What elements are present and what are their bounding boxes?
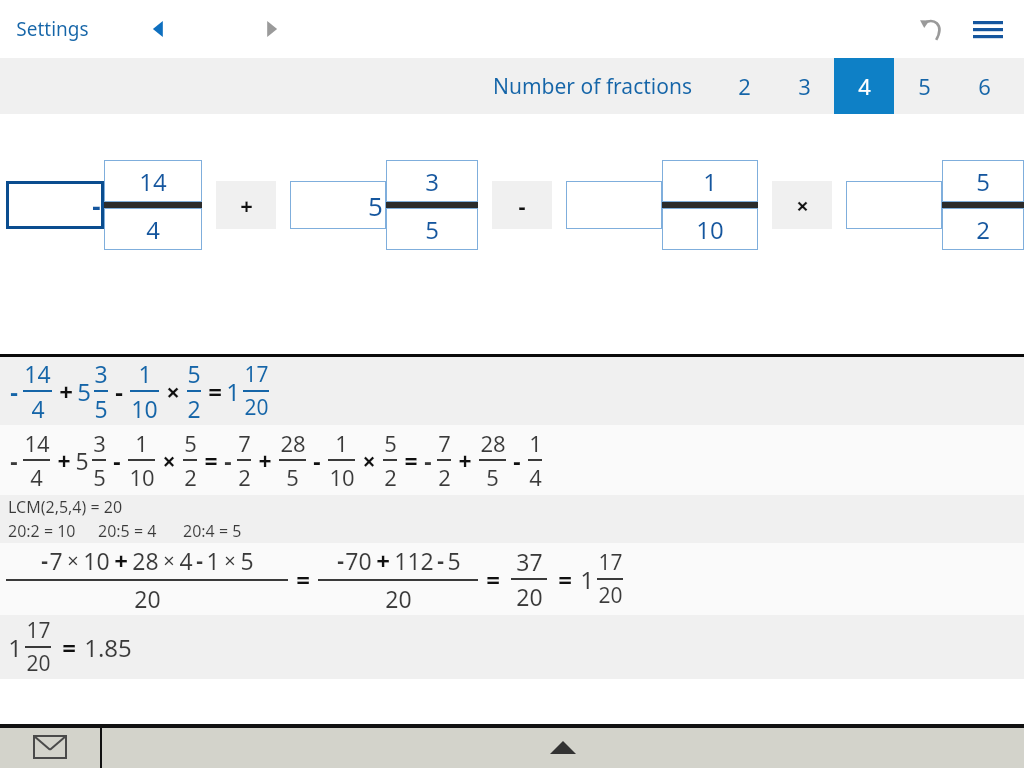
staticText: 5 <box>286 462 299 492</box>
staticText: 14 <box>24 358 51 389</box>
staticText: 4 <box>146 213 160 246</box>
staticText: 5 <box>447 545 461 576</box>
staticText: 6 <box>978 71 991 101</box>
staticText: 5 <box>240 545 254 576</box>
staticText: 5 <box>77 375 91 408</box>
staticText: LCM(2,5,4) = 20 <box>8 496 123 518</box>
staticText: 1 <box>703 165 717 198</box>
staticText: 2 <box>438 462 451 492</box>
button[interactable]: 5 <box>386 208 478 250</box>
button[interactable]: Menu <box>966 7 1010 51</box>
button[interactable]: - <box>6 181 104 229</box>
staticText: = <box>208 375 222 408</box>
button[interactable]: Expand <box>102 726 1024 768</box>
staticText: = <box>558 563 572 596</box>
staticText: 20 <box>516 581 543 612</box>
staticText: 17 <box>244 360 269 389</box>
staticText: 1 <box>226 375 240 408</box>
button[interactable]: Mail <box>0 726 100 768</box>
staticText: 14 <box>24 428 50 458</box>
staticText: 1 <box>135 428 148 458</box>
button[interactable]: 1 <box>0 615 1024 679</box>
staticText: × <box>166 375 180 408</box>
staticText: - <box>10 375 18 408</box>
staticText: 20 <box>244 393 269 422</box>
staticText: - <box>437 546 444 575</box>
button[interactable]: 2 <box>942 208 1024 250</box>
button[interactable]: 10 <box>662 208 758 250</box>
button[interactable]: 2 <box>714 58 774 114</box>
staticText: = <box>486 563 500 596</box>
staticText: + <box>258 445 272 476</box>
staticText: - <box>41 546 48 575</box>
staticText: - <box>113 445 121 476</box>
button[interactable]: - <box>0 357 1024 425</box>
button[interactable]: 6 <box>954 58 1014 114</box>
staticText: + <box>114 544 128 577</box>
staticText: 5 <box>486 462 499 492</box>
staticText: + <box>57 445 71 476</box>
staticText: × <box>67 547 79 574</box>
staticText: 1 <box>8 631 22 664</box>
button[interactable]: Undo <box>910 7 954 51</box>
button[interactable]: LCM(2,5,4) = 20 <box>0 495 1024 543</box>
staticText: - <box>337 546 344 575</box>
staticText: 7 <box>49 545 63 576</box>
button[interactable]: - <box>0 425 1024 495</box>
button[interactable]: + <box>216 181 276 229</box>
staticText: - <box>513 445 521 476</box>
staticText: 2 <box>976 213 990 246</box>
staticText: 28 <box>132 545 159 576</box>
button[interactable]: 5 <box>942 160 1024 202</box>
staticText: + <box>59 375 73 408</box>
staticText: 5 <box>384 428 397 458</box>
button[interactable]: Previous <box>138 9 178 49</box>
staticText: - <box>10 445 18 476</box>
staticText: 2 <box>184 462 197 492</box>
staticText: 4 <box>31 393 45 424</box>
button[interactable]: 4 <box>104 208 202 250</box>
staticText: - <box>115 375 123 408</box>
button[interactable]: - <box>492 181 552 229</box>
button[interactable] <box>846 181 942 229</box>
staticText: 1 <box>529 428 542 458</box>
button[interactable]: 5 <box>290 181 386 229</box>
staticText: 4 <box>529 462 542 492</box>
staticText: 1 <box>335 428 348 458</box>
staticText: 37 <box>516 546 543 577</box>
button[interactable]: 4 <box>834 58 894 114</box>
button[interactable]: Settings <box>12 10 93 48</box>
staticText: 20:2 = 10 <box>8 520 76 542</box>
staticText: 5 <box>94 393 108 424</box>
button[interactable] <box>566 181 662 229</box>
staticText: × <box>163 547 175 574</box>
staticText: 20 <box>134 583 161 614</box>
button[interactable]: 14 <box>104 160 202 202</box>
button[interactable]: 1 <box>662 160 758 202</box>
button[interactable]: 3 <box>774 58 834 114</box>
staticText: × <box>362 445 376 476</box>
button[interactable]: × <box>772 181 832 229</box>
staticText: 1 <box>580 563 594 596</box>
staticText: + <box>240 190 253 220</box>
staticText: - <box>518 190 526 220</box>
staticText: 5 <box>918 71 931 101</box>
staticText: 1 <box>138 358 152 389</box>
staticText: 14 <box>139 165 167 198</box>
staticText: 5 <box>75 445 89 476</box>
staticText: 20 <box>385 583 412 614</box>
staticText: 70 <box>345 545 372 576</box>
button[interactable]: 3 <box>386 160 478 202</box>
button[interactable]: 5 <box>894 58 954 114</box>
staticText: 2 <box>384 462 397 492</box>
staticText: 5 <box>184 428 197 458</box>
staticText: Settings <box>16 16 89 42</box>
staticText: 20 <box>598 581 623 610</box>
staticText: = <box>204 445 218 476</box>
button[interactable]: - <box>0 543 1024 615</box>
button[interactable]: Next <box>252 9 292 49</box>
staticText: - <box>224 445 232 476</box>
staticText: 3 <box>798 71 811 101</box>
staticText: + <box>458 445 472 476</box>
staticText: - <box>313 445 321 476</box>
